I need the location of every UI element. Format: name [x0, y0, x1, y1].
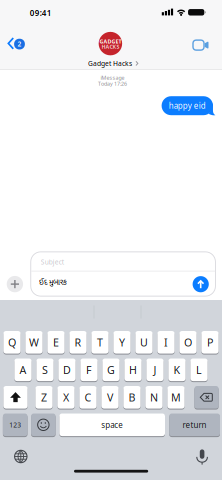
button[interactable]: S — [36, 358, 54, 382]
staticText: X — [63, 390, 69, 404]
staticText: T — [97, 335, 103, 349]
staticText: happy eid — [169, 100, 206, 111]
button[interactable]: B — [123, 386, 141, 410]
staticText: U — [140, 335, 148, 349]
button[interactable]: Delete — [194, 386, 219, 410]
staticText: R — [74, 335, 81, 349]
button[interactable]: Back — [5, 35, 27, 53]
button[interactable]: G — [102, 358, 120, 382]
button[interactable]: E — [47, 331, 65, 355]
button[interactable]: R — [69, 331, 87, 355]
button[interactable]: T — [91, 331, 109, 355]
staticText: 123 — [9, 420, 21, 429]
button[interactable]: J — [146, 358, 164, 382]
staticText: B — [128, 390, 135, 404]
staticText: Q — [8, 335, 16, 349]
staticText: O — [184, 335, 192, 349]
staticText: K — [173, 363, 180, 377]
staticText: 09:41 — [30, 8, 52, 18]
button[interactable]: return — [169, 413, 220, 437]
staticText: H — [129, 363, 137, 377]
staticText: G — [107, 363, 115, 377]
button[interactable]: U — [135, 331, 153, 355]
staticText: 2 — [17, 40, 21, 48]
button[interactable]: H — [124, 358, 142, 382]
button[interactable]: Dictation — [191, 445, 213, 467]
staticText: GADGET — [99, 38, 121, 45]
staticText: HACKS — [101, 43, 119, 50]
staticText: N — [150, 390, 158, 404]
button[interactable]: N — [145, 386, 163, 410]
staticText: P — [207, 335, 213, 349]
staticText: Today 17:26 — [98, 80, 127, 87]
staticText: space — [101, 419, 123, 430]
button[interactable]: D — [58, 358, 76, 382]
staticText: Subject — [41, 258, 64, 266]
staticText: S — [42, 363, 48, 377]
staticText: F — [86, 363, 92, 377]
button[interactable]: M — [167, 386, 185, 410]
button[interactable]: F — [80, 358, 98, 382]
button[interactable]: P — [201, 331, 219, 355]
staticText: C — [84, 390, 91, 404]
button[interactable]: O — [179, 331, 197, 355]
button[interactable]: A — [14, 358, 32, 382]
button[interactable]: space — [59, 413, 165, 437]
button[interactable]: L — [190, 358, 208, 382]
button[interactable]: Shift — [3, 386, 28, 410]
staticText: E — [53, 335, 59, 349]
button[interactable]: W — [25, 331, 43, 355]
button[interactable]: FaceTime video call — [188, 34, 216, 56]
staticText: W — [29, 335, 39, 349]
button[interactable]: X — [57, 386, 75, 410]
button[interactable]: Send — [193, 276, 209, 292]
button[interactable]: Q — [3, 331, 21, 355]
button[interactable]: Z — [35, 386, 53, 410]
staticText: Gadget Hacks — [88, 59, 132, 68]
staticText: ઈદ મુબારક — [39, 277, 67, 287]
staticText: iMessage — [100, 74, 124, 81]
button[interactable]: Emoji — [31, 413, 56, 437]
button[interactable]: C — [79, 386, 97, 410]
staticText: J — [153, 363, 156, 377]
staticText: Z — [41, 390, 47, 404]
staticText: M — [171, 390, 181, 404]
button[interactable]: Next keyboard — [10, 445, 32, 467]
button[interactable]: K — [168, 358, 186, 382]
button[interactable]: V — [101, 386, 119, 410]
staticText: Y — [119, 335, 125, 349]
button[interactable]: 123 — [3, 413, 27, 437]
staticText: D — [63, 363, 71, 377]
staticText: L — [196, 363, 202, 377]
staticText: I — [164, 335, 168, 349]
button[interactable]: Apps — [7, 276, 23, 292]
button[interactable]: Gadget Hacks conversation details — [84, 30, 138, 68]
button[interactable]: I — [157, 331, 175, 355]
staticText: V — [107, 390, 113, 404]
staticText: return — [183, 419, 207, 430]
button[interactable]: Y — [113, 331, 131, 355]
staticText: A — [19, 363, 26, 377]
